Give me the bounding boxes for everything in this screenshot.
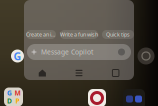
staticText: Message Copilot bbox=[41, 48, 93, 56]
button[interactable]: Chats bbox=[61, 67, 97, 79]
button[interactable]: Quick tips bbox=[102, 30, 134, 39]
button[interactable]: Create an image bbox=[26, 30, 56, 39]
button[interactable]: Write a fun wish bbox=[60, 30, 98, 39]
button[interactable]: Home bbox=[24, 67, 61, 79]
staticText: Create an image bbox=[26, 31, 56, 38]
staticText: M bbox=[14, 89, 20, 97]
button[interactable]: Apps folder bbox=[123, 89, 145, 106]
button[interactable]: Pages bbox=[97, 67, 134, 79]
button[interactable]: Browser bbox=[88, 89, 106, 106]
staticText: Write a fun wish bbox=[60, 31, 98, 38]
staticText: D bbox=[7, 97, 12, 105]
button[interactable]: Google folder bbox=[4, 87, 23, 106]
button[interactable]: Message Copilot bbox=[27, 44, 131, 60]
staticText: G bbox=[7, 89, 12, 97]
staticText: P bbox=[15, 97, 19, 105]
staticText: Quick tips bbox=[106, 31, 130, 38]
button[interactable]: Widget bbox=[137, 47, 154, 64]
staticText: G bbox=[13, 49, 21, 63]
button[interactable]: Google bbox=[11, 49, 24, 62]
